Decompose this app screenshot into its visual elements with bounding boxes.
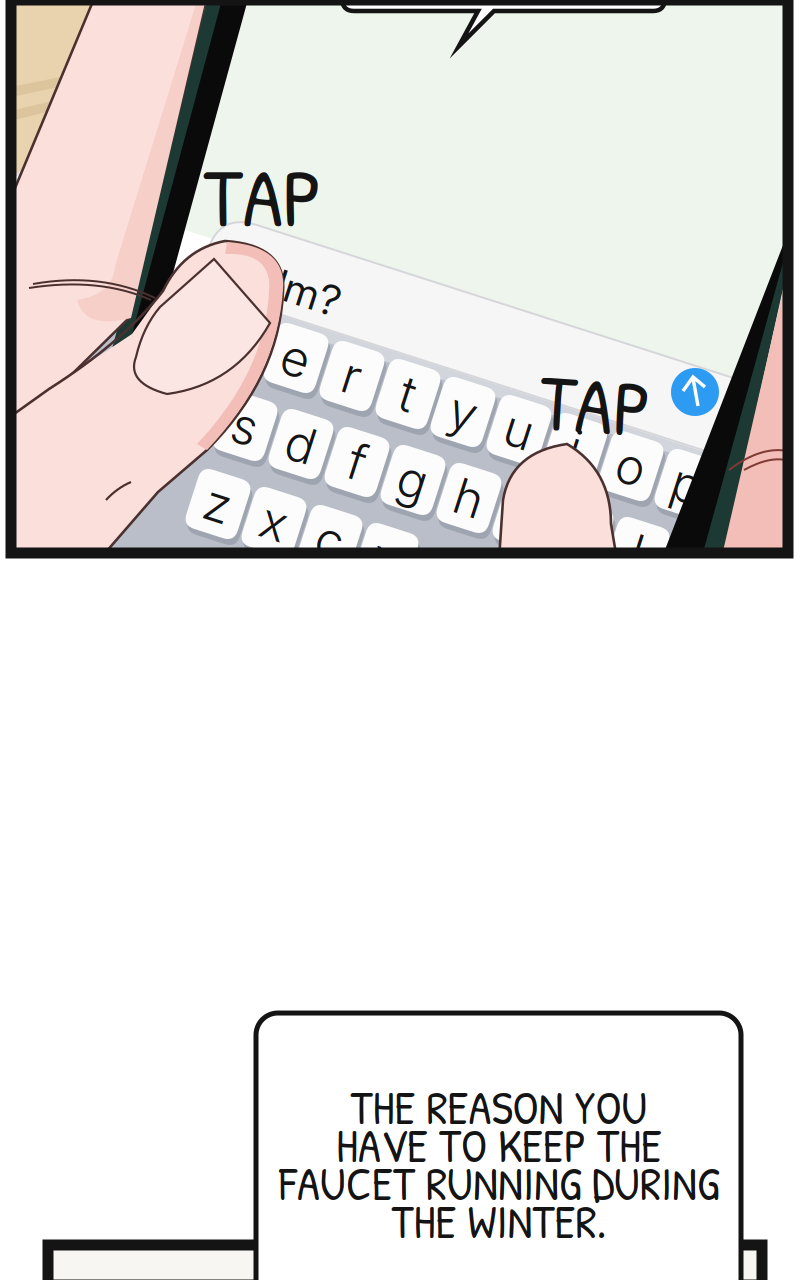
staticText: TAP xyxy=(539,353,650,457)
staticText: k xyxy=(568,504,594,564)
staticText: z xyxy=(204,474,231,534)
staticText: x xyxy=(261,492,287,552)
staticText: l xyxy=(631,522,643,582)
staticText: y xyxy=(449,382,476,442)
staticText: Hm? xyxy=(256,265,342,315)
staticText: HAVE TO KEEP THE xyxy=(336,1113,662,1177)
staticText: p xyxy=(672,454,702,514)
staticText: s xyxy=(232,396,257,456)
staticText: o xyxy=(616,436,645,496)
staticText: f xyxy=(348,432,365,492)
staticText: c xyxy=(316,510,344,570)
staticText: g xyxy=(398,450,428,510)
staticText: e xyxy=(281,328,310,388)
staticText: i xyxy=(569,418,581,478)
staticText: THE REASON YOU xyxy=(350,1075,647,1139)
staticText: h xyxy=(454,468,483,528)
staticText: u xyxy=(504,400,533,460)
staticText: d xyxy=(286,414,316,474)
staticText: t xyxy=(400,364,415,424)
staticText: FAUCET RUNNING DURING xyxy=(279,1151,719,1215)
staticText: TAP xyxy=(203,140,322,252)
staticText: v xyxy=(372,528,399,588)
staticText: THE WINTER. xyxy=(391,1189,606,1253)
staticText: r xyxy=(343,346,361,406)
